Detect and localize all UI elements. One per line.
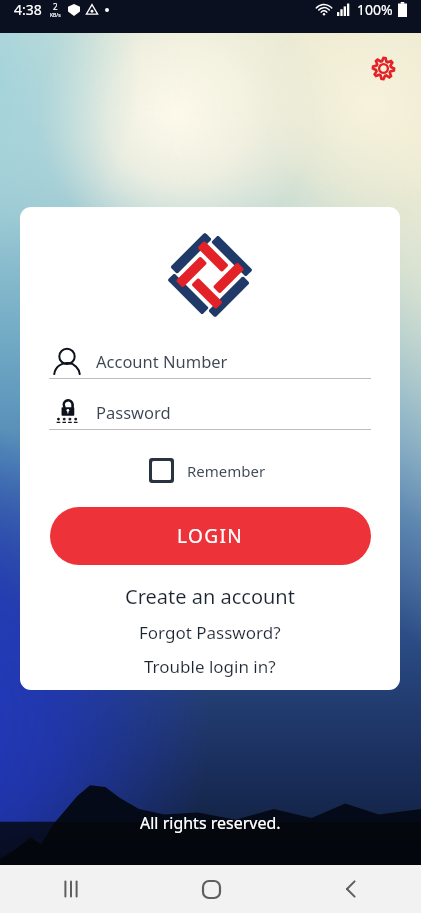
button[interactable]: Forgot Password? xyxy=(129,617,291,648)
button[interactable]: Remember xyxy=(143,452,272,489)
staticText: Forgot Password? xyxy=(139,621,281,644)
staticText: Password xyxy=(96,401,171,423)
button[interactable]: Settings xyxy=(365,50,401,86)
staticText: Remember xyxy=(187,461,266,481)
staticText: LOGIN xyxy=(177,523,244,549)
staticText: Create an account xyxy=(125,583,295,610)
staticText: 2 xyxy=(53,1,58,12)
staticText: Account Number xyxy=(96,350,228,372)
button[interactable]: Home xyxy=(141,865,281,913)
button[interactable]: Back xyxy=(281,865,421,913)
button[interactable]: Create an account xyxy=(115,579,305,614)
staticText: Trouble login in? xyxy=(144,655,276,678)
button[interactable]: Trouble login in? xyxy=(134,651,286,682)
button[interactable]: Recents xyxy=(0,865,141,913)
staticText: 4:38 xyxy=(14,0,42,19)
staticText: KB/s xyxy=(50,12,61,19)
staticText: All rights reserved. xyxy=(140,812,281,834)
staticText: 100% xyxy=(357,0,393,19)
button[interactable]: LOGIN xyxy=(50,507,371,565)
